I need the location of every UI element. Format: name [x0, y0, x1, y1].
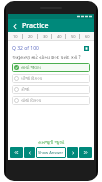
button[interactable]: 50 [66, 32, 80, 40]
button[interactable]: Show Answer [36, 147, 66, 158]
staticText: 30 [43, 34, 48, 39]
button[interactable]: બીજો વિકલ્પ [12, 74, 90, 83]
staticText: 60 [85, 34, 90, 39]
staticText: Show Answer [38, 150, 64, 155]
staticText: 50 [71, 34, 76, 39]
button[interactable]: સાચો જવાબ [12, 63, 90, 72]
button[interactable]: Last question [79, 147, 92, 158]
staticText: 20 [28, 34, 33, 39]
staticText: ચોથો વિકલ્પ [21, 98, 42, 103]
staticText: સાચો જવાબ [21, 65, 41, 70]
staticText: અનુસરણ માટે યોગ્ય શબ્દ પસંદ કરો ? [12, 54, 81, 60]
button[interactable]: 40 [52, 32, 66, 40]
button[interactable]: 60 [80, 32, 94, 40]
button[interactable]: 20 [23, 32, 38, 40]
staticText: Practice [22, 21, 49, 31]
staticText: 40 [57, 34, 62, 39]
button[interactable]: First question [10, 147, 23, 158]
button[interactable]: Bookmark [82, 44, 90, 52]
button[interactable]: ત્રીજો [12, 85, 90, 94]
button[interactable]: સમજૂતી જુઓ [8, 138, 94, 146]
staticText: સમજૂતી જુઓ [38, 139, 65, 145]
staticText: બીજો વિકલ્પ [21, 76, 43, 81]
staticText: Q 32 of 100 [12, 45, 39, 52]
button[interactable]: 30 [38, 32, 52, 40]
button[interactable]: Previous question [24, 147, 35, 158]
button[interactable]: ચોથો વિકલ્પ [12, 96, 90, 105]
button[interactable]: 10 [8, 32, 23, 40]
staticText: ત્રીજો [21, 88, 30, 92]
button[interactable]: Next question [67, 147, 78, 158]
staticText: 10 [13, 34, 18, 39]
button[interactable]: Back [10, 21, 20, 31]
